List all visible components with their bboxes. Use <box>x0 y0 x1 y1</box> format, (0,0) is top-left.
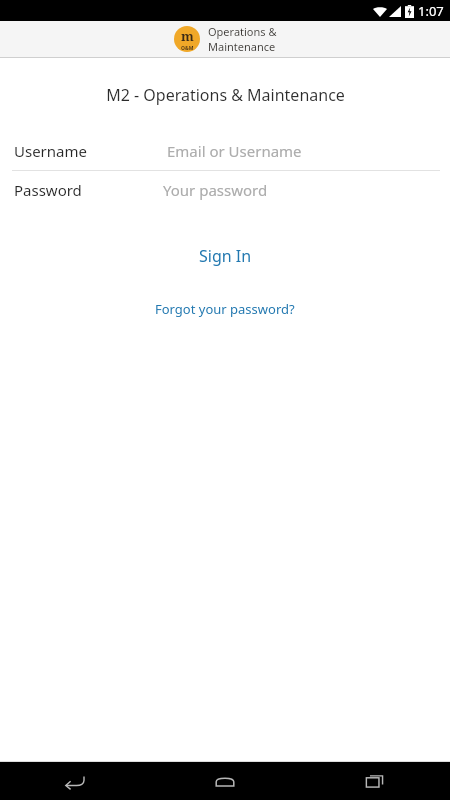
staticText: M2 - Operations & Maintenance <box>106 84 345 106</box>
staticText: Username <box>14 141 87 161</box>
staticText: Your password <box>163 180 268 200</box>
button[interactable]: Username <box>0 132 450 170</box>
staticText: m <box>181 27 194 45</box>
staticText: Password <box>14 180 82 200</box>
staticText: O&M <box>181 45 194 52</box>
button[interactable]: Sign In <box>181 241 270 271</box>
button[interactable]: Back <box>0 762 150 800</box>
staticText: 1:07 <box>418 2 444 20</box>
button[interactable]: Home <box>150 762 300 800</box>
button[interactable]: Recent apps <box>300 762 450 800</box>
staticText: Sign In <box>199 245 252 267</box>
staticText: Operations & <box>208 24 277 39</box>
staticText: Email or Username <box>167 141 302 161</box>
staticText: Forgot your password? <box>155 300 295 318</box>
staticText: Maintenance <box>208 39 276 54</box>
button[interactable]: Forgot your password? <box>145 297 305 321</box>
button[interactable]: Password <box>0 171 450 209</box>
